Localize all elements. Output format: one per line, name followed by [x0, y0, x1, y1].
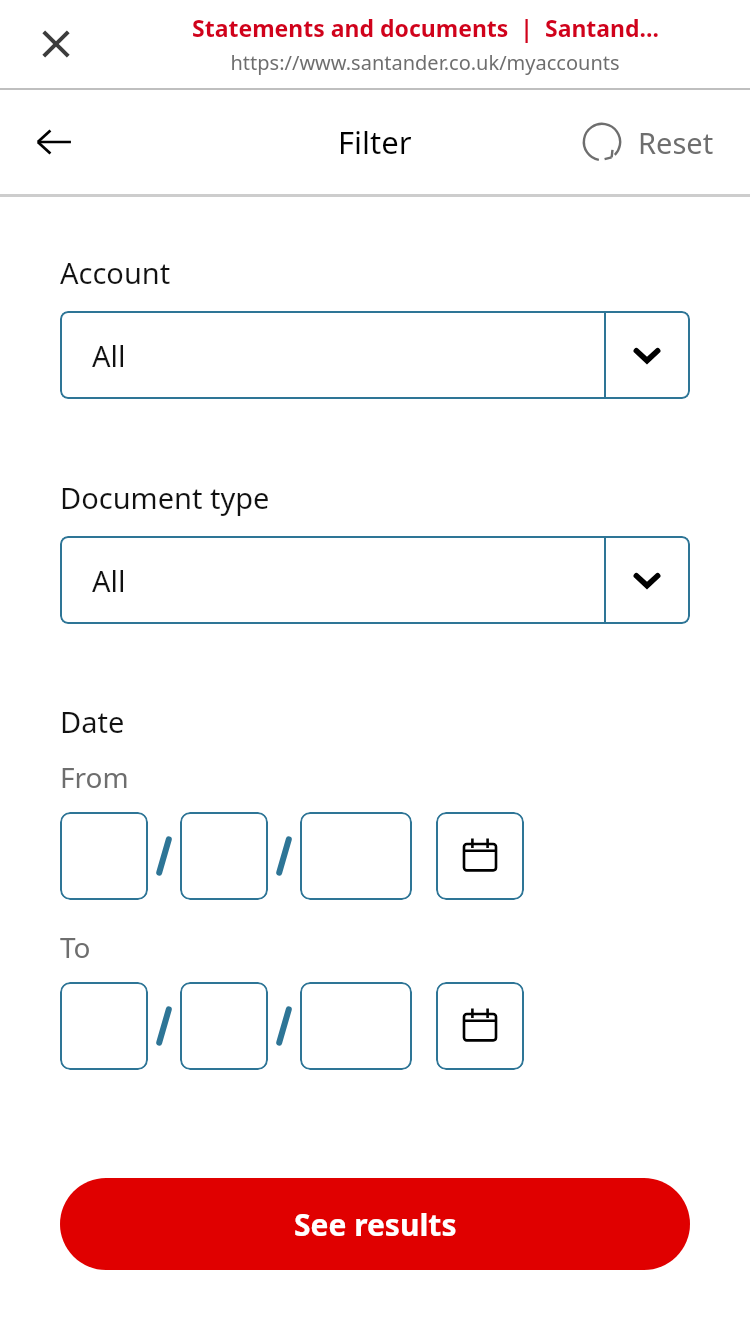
staticText: Document type — [60, 478, 270, 517]
button[interactable]: All — [60, 311, 690, 399]
button[interactable] — [60, 982, 148, 1070]
button[interactable]: See results — [60, 1178, 690, 1270]
staticText: From — [60, 758, 129, 796]
button[interactable] — [300, 982, 412, 1070]
button[interactable]: Open date picker — [436, 982, 524, 1070]
button[interactable] — [180, 812, 268, 900]
staticText: To — [60, 928, 91, 966]
button[interactable] — [180, 982, 268, 1070]
staticText: See results — [294, 1204, 457, 1245]
button[interactable]: Reset — [572, 110, 722, 174]
button[interactable] — [300, 812, 412, 900]
staticText: Date — [60, 702, 125, 741]
staticText: All — [92, 336, 126, 375]
button[interactable]: Open date picker — [436, 812, 524, 900]
staticText: https://www.santander.co.uk/myaccounts — [230, 49, 620, 76]
button[interactable]: Back — [16, 104, 92, 180]
button[interactable]: Close — [20, 8, 92, 80]
staticText: Statements and documents | Santand... — [192, 12, 659, 43]
button[interactable] — [60, 812, 148, 900]
staticText: All — [92, 561, 126, 600]
staticText: Filter — [338, 121, 412, 163]
staticText: Reset — [638, 123, 714, 162]
staticText: Account — [60, 253, 171, 292]
button[interactable]: All — [60, 536, 690, 624]
